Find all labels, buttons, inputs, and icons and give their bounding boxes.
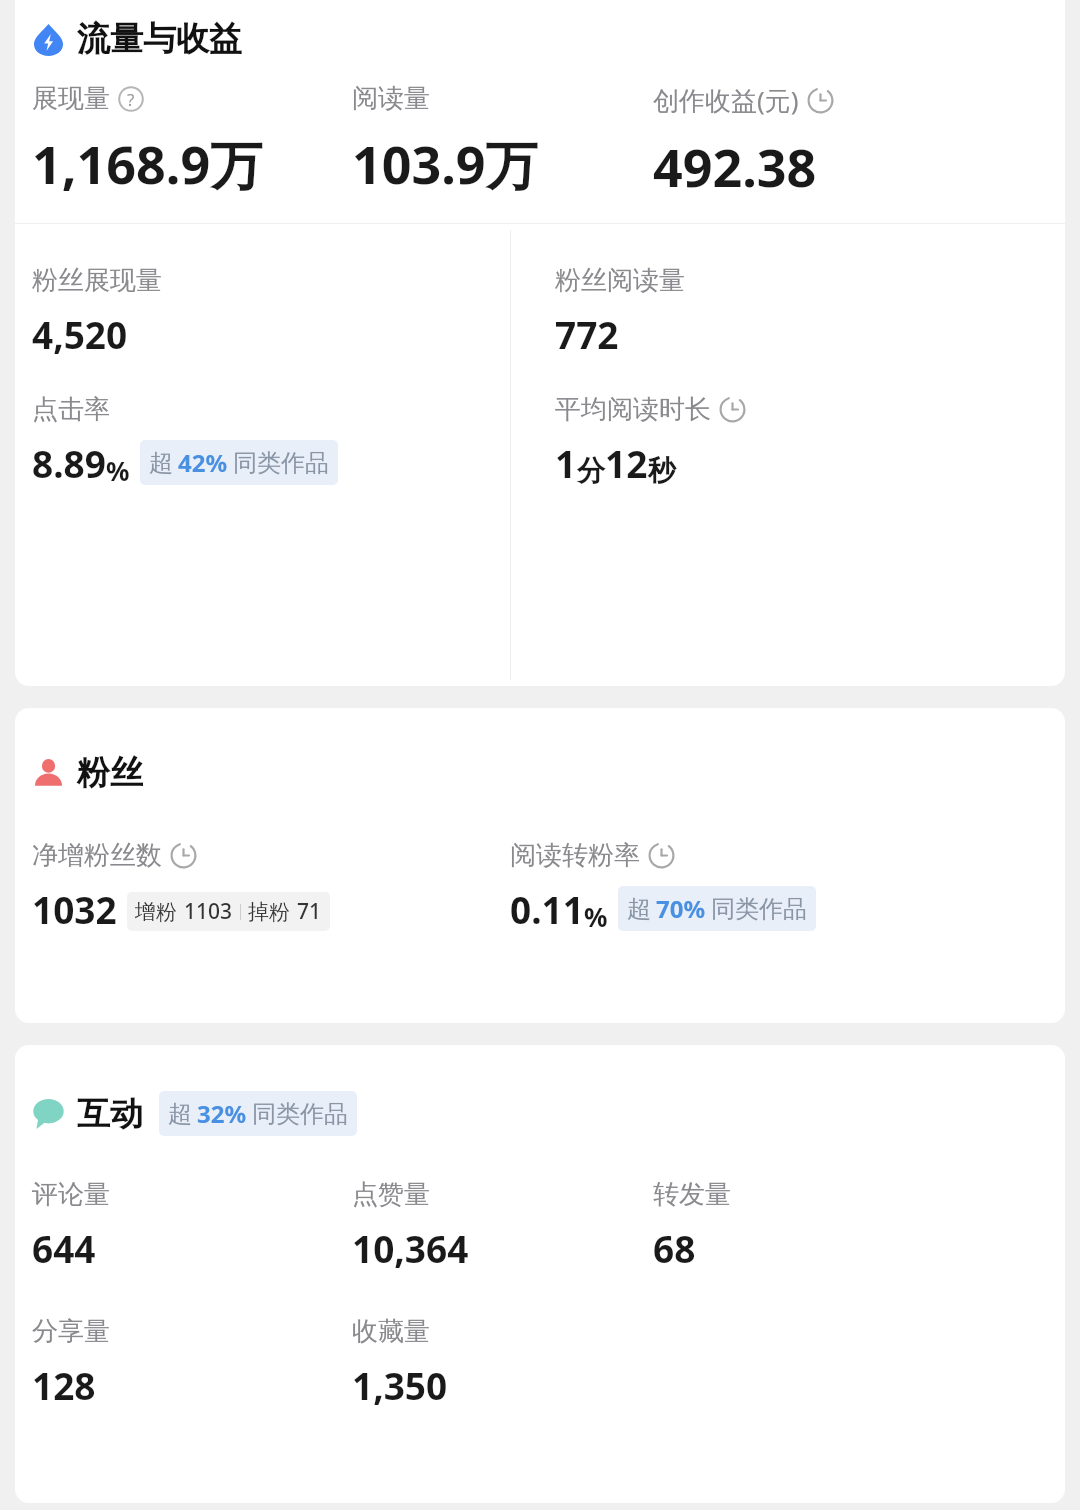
button[interactable]: 评论量 [32,1178,352,1273]
staticText: 转发量 [653,1178,731,1211]
button[interactable]: 点赞量 [352,1178,653,1273]
staticText: 同类作品 [252,1099,348,1129]
staticText: 阅读转粉率 [510,839,640,872]
staticText: 10,364 [352,1223,469,1273]
staticText: 超 [168,1099,192,1129]
staticText: 同类作品 [233,448,329,478]
staticText: 粉丝 [77,752,143,794]
staticText: 掉粉 [248,899,290,925]
staticText: 净增粉丝数 [32,839,162,872]
other: 互动 [32,1097,65,1130]
staticText: 1032 [32,884,117,934]
staticText: 644 [32,1223,96,1273]
button[interactable]: 粉丝 [32,752,143,794]
button[interactable]: 粉丝展现量 [32,264,162,359]
button[interactable]: 转发量 [653,1178,1065,1273]
staticText: 4,520 [32,309,128,359]
button[interactable]: 分享量 [32,1315,352,1410]
staticText: 分享量 [32,1315,110,1348]
staticText: 128 [32,1360,96,1410]
staticText: 1 [555,438,577,488]
staticText: 分 [577,453,605,488]
staticText: 秒 [648,453,676,488]
staticText: % [584,899,608,934]
staticText: 42% [178,446,228,479]
button[interactable]: 点击率 [32,393,338,488]
staticText: 70% [656,892,706,925]
staticText: 1,350 [352,1360,448,1410]
staticText: 增粉 [135,899,177,925]
button[interactable]: 粉丝阅读量 [555,264,685,359]
staticText: 1,168.9万 [32,128,263,199]
other: 更新时间 [170,842,197,869]
staticText: 71 [297,897,322,926]
staticText: 超 [627,894,651,924]
button[interactable]: 平均阅读时长 [555,393,746,488]
button[interactable]: 收藏量 [352,1315,653,1410]
staticText: 阅读量 [352,82,430,115]
staticText: 32% [197,1097,247,1130]
other: 更新时间 [807,87,834,114]
staticText: 流量与收益 [77,18,242,60]
staticText: 评论量 [32,1178,110,1211]
staticText: 点赞量 [352,1178,430,1211]
staticText: 互动 [77,1093,143,1135]
staticText: 0.11 [510,884,584,934]
button[interactable]: 阅读量 [352,82,653,199]
staticText: 12 [605,438,648,488]
staticText: 1103 [184,897,233,926]
other: 粉丝 [32,757,65,790]
staticText: 创作收益(元) [653,82,799,118]
staticText: 点击率 [32,393,110,426]
button[interactable]: 超 [140,440,338,485]
staticText: 超 [149,448,173,478]
staticText: 68 [653,1223,696,1273]
staticText: 收藏量 [352,1315,430,1348]
button[interactable]: 展现量 [32,82,352,199]
staticText: 103.9万 [352,128,538,199]
staticText: 同类作品 [711,894,807,924]
staticText: 粉丝阅读量 [555,264,685,297]
staticText: 平均阅读时长 [555,393,711,426]
button[interactable]: 互动 [32,1091,357,1136]
button[interactable]: 创作收益(元) [653,82,1065,202]
other: 更新时间 [719,396,746,423]
other: 更新时间 [648,842,675,869]
staticText: 492.38 [653,131,817,202]
other: 流量与收益 [32,23,65,56]
staticText: 粉丝展现量 [32,264,162,297]
button[interactable]: 流量与收益 [32,18,242,60]
staticText: ? [127,88,135,111]
button[interactable]: 超 [618,886,816,931]
staticText: 展现量 [32,82,110,115]
staticText: 772 [555,309,619,359]
staticText: % [106,453,130,488]
staticText: 8.89 [32,438,106,488]
button[interactable]: 超 [159,1091,357,1136]
other: 说明 [118,86,144,112]
